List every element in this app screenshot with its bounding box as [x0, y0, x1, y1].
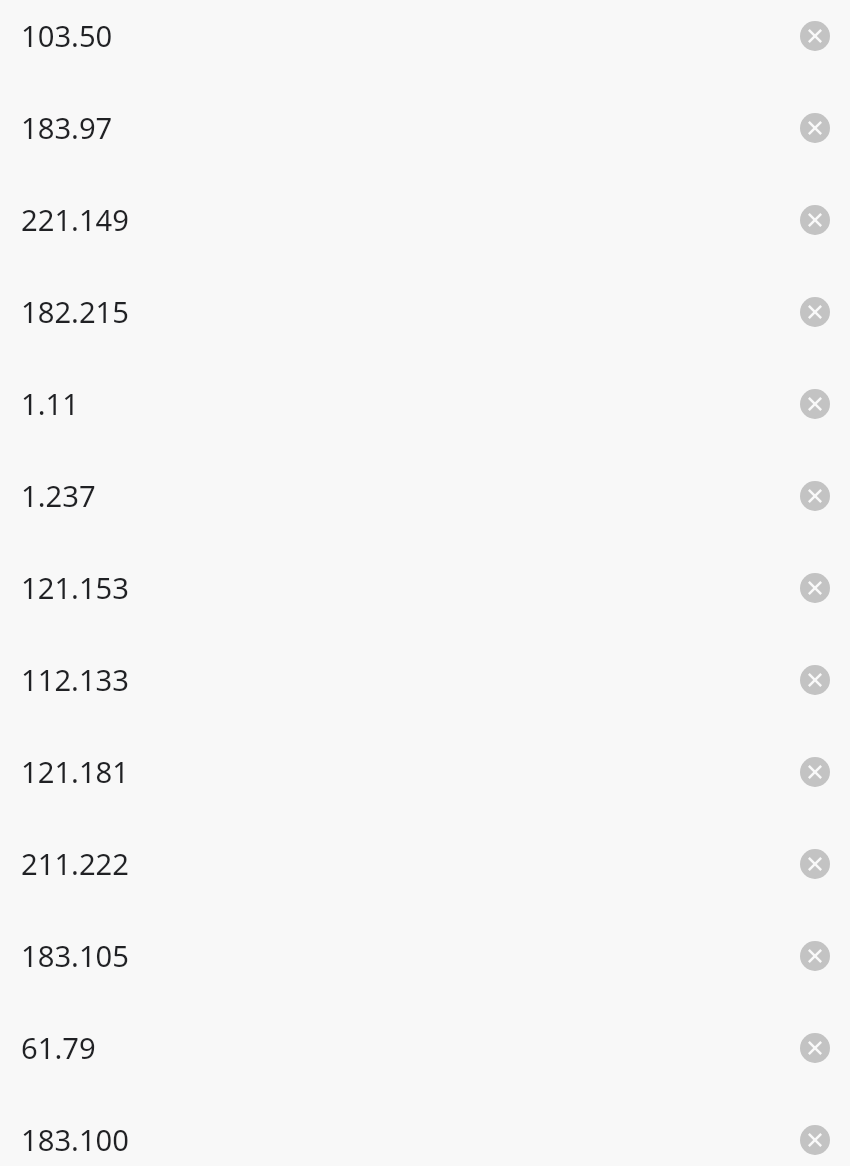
button[interactable]: Clear 183.105 — [800, 941, 830, 971]
button[interactable]: 183.100 — [0, 1094, 850, 1166]
staticText: 103.50 — [21, 16, 113, 56]
button[interactable]: 183.97 — [0, 82, 850, 174]
button[interactable]: Clear 1.11 — [800, 389, 830, 419]
button[interactable]: Clear 121.181 — [800, 757, 830, 787]
button[interactable]: Clear 121.153 — [800, 573, 830, 603]
button[interactable]: Clear 1.237 — [800, 481, 830, 511]
staticText: 1.11 — [21, 384, 79, 424]
staticText: 221.149 — [21, 200, 129, 240]
button[interactable]: 1.237 — [0, 450, 850, 542]
button[interactable]: Clear 103.50 — [800, 21, 830, 51]
button[interactable]: 211.222 — [0, 818, 850, 910]
button[interactable]: 221.149 — [0, 174, 850, 266]
button[interactable]: 121.153 — [0, 542, 850, 634]
button[interactable]: Clear 211.222 — [800, 849, 830, 879]
staticText: 121.153 — [21, 568, 129, 608]
button[interactable]: 112.133 — [0, 634, 850, 726]
staticText: 61.79 — [21, 1028, 96, 1068]
staticText: 183.100 — [21, 1120, 129, 1160]
button[interactable]: 61.79 — [0, 1002, 850, 1094]
staticText: 183.105 — [21, 936, 129, 976]
button[interactable]: Clear 182.215 — [800, 297, 830, 327]
button[interactable]: 1.11 — [0, 358, 850, 450]
staticText: 121.181 — [21, 752, 129, 792]
button[interactable]: Clear 183.100 — [800, 1125, 830, 1155]
staticText: 182.215 — [21, 292, 129, 332]
staticText: 183.97 — [21, 108, 113, 148]
staticText: 211.222 — [21, 844, 129, 884]
button[interactable]: Clear 221.149 — [800, 205, 830, 235]
button[interactable]: 103.50 — [0, 0, 850, 82]
button[interactable]: 182.215 — [0, 266, 850, 358]
button[interactable]: 183.105 — [0, 910, 850, 1002]
button[interactable]: Clear 61.79 — [800, 1033, 830, 1063]
staticText: 1.237 — [21, 476, 96, 516]
button[interactable]: Clear 183.97 — [800, 113, 830, 143]
button[interactable]: Clear 112.133 — [800, 665, 830, 695]
staticText: 112.133 — [21, 660, 129, 700]
button[interactable]: 121.181 — [0, 726, 850, 818]
